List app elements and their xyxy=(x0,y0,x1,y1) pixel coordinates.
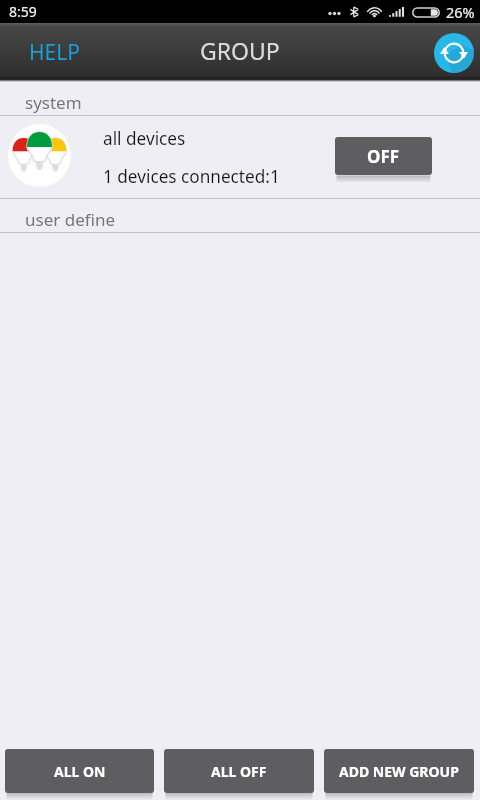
button[interactable]: OFF xyxy=(335,137,432,175)
staticText: user define xyxy=(25,208,116,231)
staticText: GROUP xyxy=(200,35,280,66)
button[interactable]: Refresh xyxy=(434,33,474,73)
staticText: ALL OFF xyxy=(211,762,267,781)
button[interactable]: ADD NEW GROUP xyxy=(324,749,474,793)
staticText: ADD NEW GROUP xyxy=(339,762,459,781)
staticText: 1 devices connected:1 xyxy=(103,165,280,188)
staticText: system xyxy=(25,91,82,114)
staticText: 8:59 xyxy=(9,2,37,21)
staticText: HELP xyxy=(29,38,80,67)
staticText: ALL ON xyxy=(54,762,106,781)
button[interactable]: all devices xyxy=(0,116,480,199)
button[interactable]: HELP xyxy=(0,24,109,81)
staticText: all devices xyxy=(103,127,186,150)
staticText: OFF xyxy=(367,145,400,168)
button[interactable]: ALL ON xyxy=(5,749,154,793)
staticText: 26% xyxy=(446,2,475,22)
button[interactable]: ALL OFF xyxy=(164,749,314,793)
